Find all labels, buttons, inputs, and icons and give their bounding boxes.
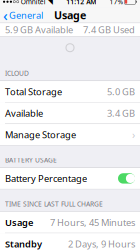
staticText: 7 Hours, 45 Minutes (50, 216, 135, 228)
staticText: TIME SINCE LAST FULL CHARGE (5, 199, 103, 208)
button[interactable]: Battery Percentage (0, 168, 140, 189)
staticText: Available (5, 107, 43, 119)
staticText: Usage (5, 216, 33, 228)
staticText: Battery Percentage (5, 172, 87, 185)
staticText: 11:12 AM (66, 0, 96, 6)
button[interactable]: Manage Storage (0, 124, 140, 145)
staticText: 5.9 GB Available (5, 23, 73, 36)
staticText: Manage Storage (5, 128, 76, 141)
staticText: 3.4 GB (107, 107, 135, 119)
staticText: BATTERY USAGE (5, 156, 57, 164)
staticText: Omnitel (19, 0, 46, 6)
staticText: 2 Days, 9 Hours (68, 238, 135, 250)
staticText: ◥ (46, 0, 53, 5)
staticText: › (132, 127, 135, 142)
staticText: Total Storage (5, 85, 62, 98)
staticText: 5.0 GB (107, 85, 135, 98)
staticText: Usage (54, 8, 86, 22)
button[interactable]: ‹ (0, 8, 46, 23)
staticText: 17% (109, 0, 123, 6)
staticText: ‹ (3, 5, 8, 25)
staticText: ICLOUD (5, 69, 29, 78)
staticText: General (9, 9, 43, 21)
staticText: Standby (5, 238, 42, 250)
staticText: 7.4 GB Used (83, 23, 135, 36)
